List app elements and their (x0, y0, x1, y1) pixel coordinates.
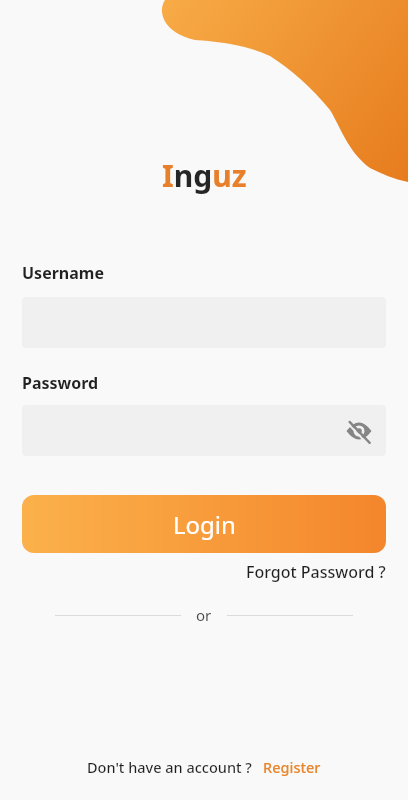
staticText: Don't have an account ? (87, 757, 252, 777)
staticText: or (196, 605, 212, 625)
button[interactable]: Forgot Password ? (246, 561, 386, 583)
button[interactable]: Register (263, 757, 321, 777)
button[interactable] (346, 418, 372, 444)
staticText: Register (263, 757, 321, 777)
staticText: Forgot Password ? (246, 561, 386, 583)
button[interactable] (22, 405, 386, 456)
button[interactable]: Login (22, 495, 386, 553)
staticText: Password (22, 372, 99, 394)
staticText: Username (22, 262, 104, 284)
staticText: Login (173, 508, 236, 541)
staticText: Inguz (162, 155, 247, 196)
